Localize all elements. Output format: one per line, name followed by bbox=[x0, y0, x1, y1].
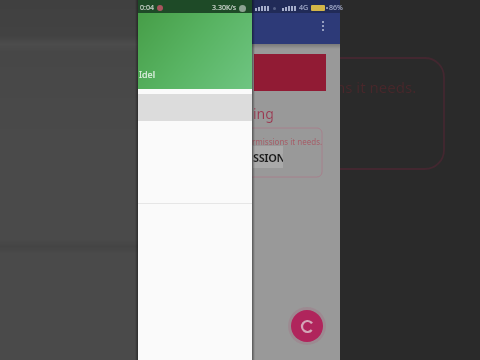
staticText: 0:04 bbox=[140, 3, 154, 13]
staticText: SSIONS bbox=[253, 150, 283, 165]
staticText: 4G bbox=[299, 3, 309, 13]
staticText: ing bbox=[253, 104, 274, 123]
staticText: ns it needs. bbox=[336, 77, 417, 97]
staticText: 86% bbox=[329, 3, 343, 13]
staticText: 3.30K/s bbox=[212, 3, 237, 13]
button[interactable]: SSIONS bbox=[253, 146, 283, 168]
staticText: Idel bbox=[139, 68, 155, 80]
button[interactable]: Refresh bbox=[291, 310, 323, 342]
button[interactable]: More options bbox=[318, 21, 328, 36]
staticText: rmissions it needs. bbox=[252, 136, 323, 147]
